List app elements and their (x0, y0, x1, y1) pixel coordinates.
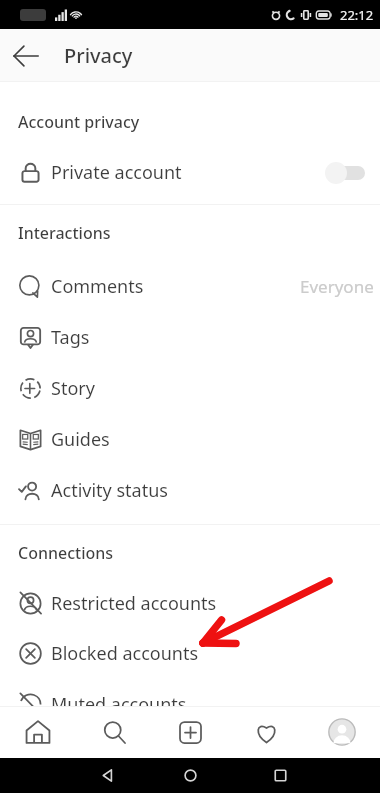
staticText: 22:12 (340, 6, 374, 24)
staticText: Comments (51, 274, 144, 299)
button[interactable]: Search (76, 706, 152, 758)
button[interactable]: Activity status (0, 465, 380, 516)
button[interactable]: Restricted accounts (0, 578, 380, 629)
button[interactable]: Home (183, 768, 198, 783)
button[interactable]: Recents (273, 768, 288, 783)
button[interactable]: Back (0, 29, 51, 82)
staticText: Connections (18, 542, 114, 564)
staticText: Blocked accounts (51, 641, 199, 666)
button[interactable]: Home (0, 706, 76, 758)
button[interactable]: Guides (0, 414, 380, 465)
staticText: Muted accounts (51, 692, 187, 706)
staticText: Guides (51, 427, 110, 452)
staticText: Everyone (300, 275, 374, 298)
button[interactable]: Blocked accounts (0, 628, 380, 679)
staticText: Privacy (64, 42, 133, 69)
staticText: Account privacy (18, 111, 140, 133)
button[interactable]: Private account (0, 147, 380, 198)
staticText: Activity status (51, 478, 168, 503)
staticText: Interactions (18, 222, 111, 244)
button[interactable]: Comments (0, 261, 380, 312)
button[interactable]: Muted accounts (0, 679, 380, 706)
button[interactable]: Activity (228, 706, 304, 758)
button[interactable]: Story (0, 363, 380, 414)
button[interactable]: Tags (0, 312, 380, 363)
staticText: Tags (51, 325, 90, 350)
button[interactable]: Create (152, 706, 228, 758)
button[interactable]: Back (100, 768, 115, 783)
staticText: Restricted accounts (51, 591, 217, 616)
staticText: Story (51, 376, 95, 401)
staticText: Private account (51, 160, 182, 185)
button[interactable]: Profile (304, 706, 380, 758)
